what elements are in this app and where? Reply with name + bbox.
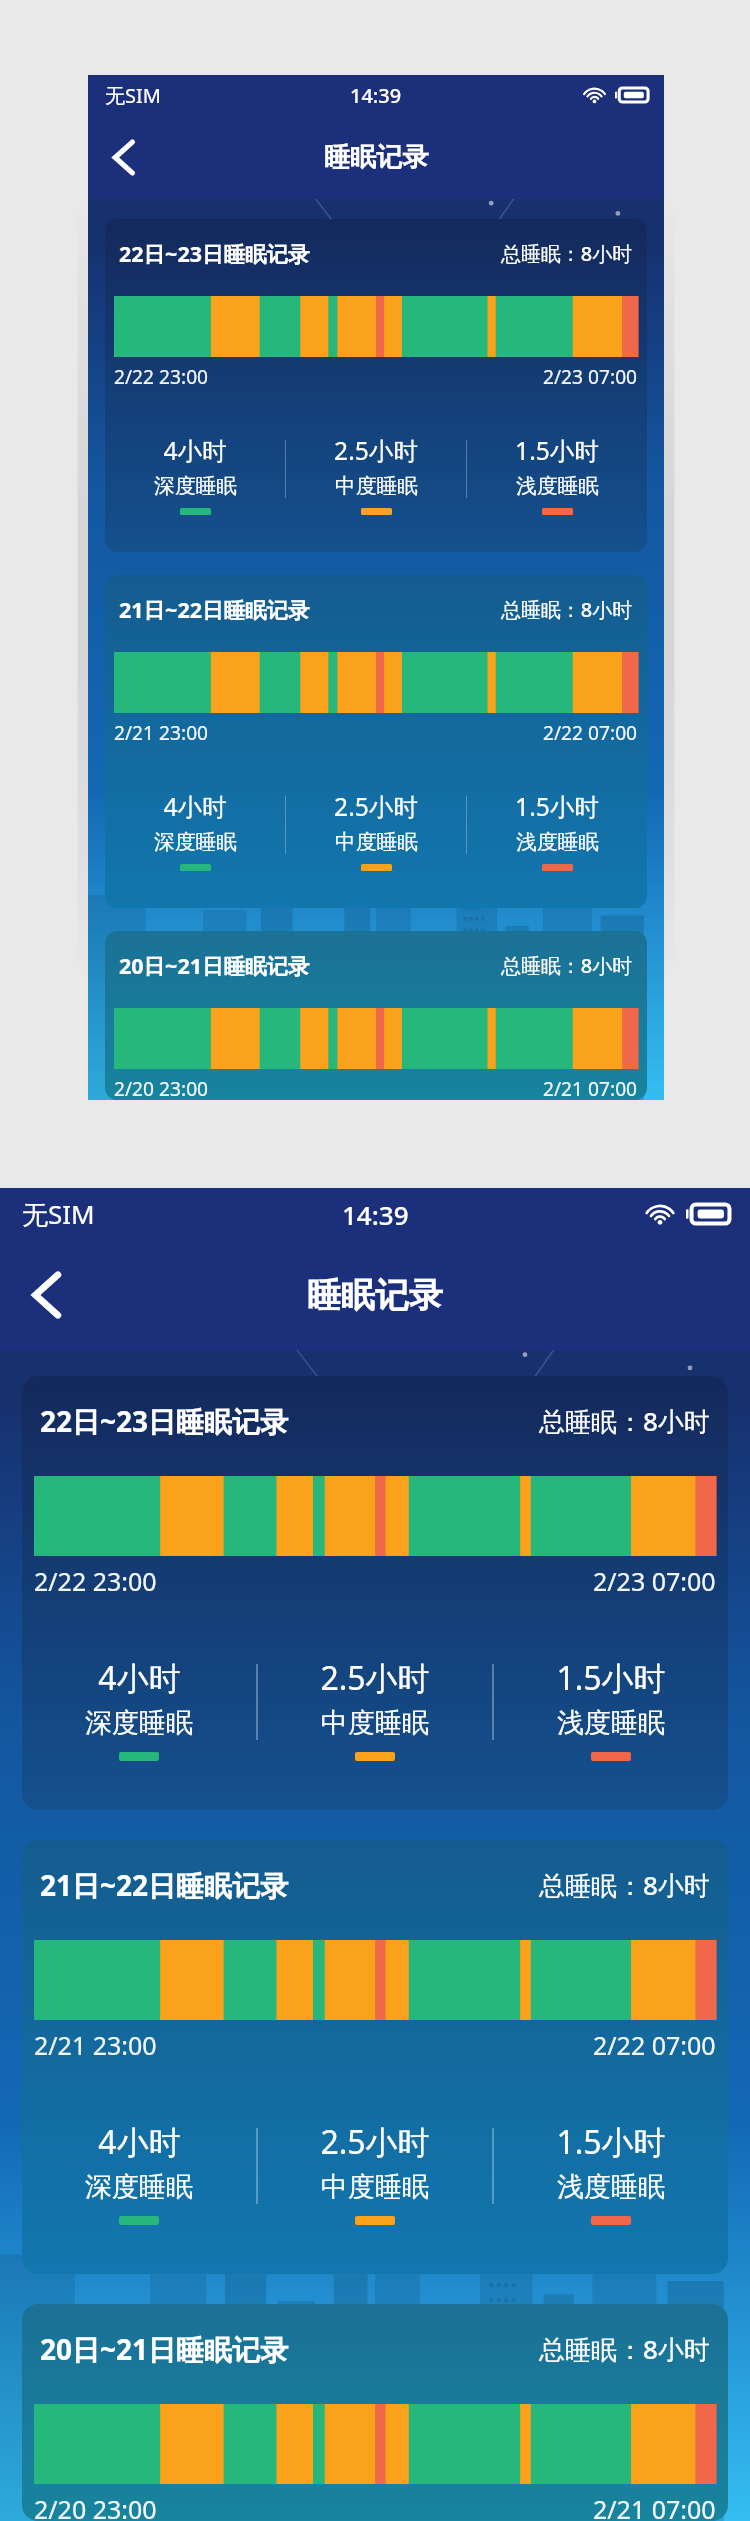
staticText: 中度睡眠 (321, 1706, 429, 1740)
button[interactable]: 1.5小时 (494, 2120, 728, 2225)
staticText: 浅度睡眠 (516, 473, 599, 499)
button[interactable]: Back (8, 1256, 86, 1334)
staticText: 2/21 23:00 (34, 2028, 157, 2062)
staticText: 总睡眠：8小时 (539, 1867, 710, 1903)
staticText: 2/23 07:00 (593, 1564, 716, 1598)
staticText: 1.5小时 (556, 2120, 666, 2164)
staticText: 1.5小时 (515, 434, 599, 468)
button[interactable]: 2.5小时 (286, 434, 466, 515)
staticText: 2/20 23:00 (34, 2492, 157, 2521)
staticText: 20日~21日睡眠记录 (40, 2330, 289, 2368)
staticText: 4小时 (98, 2120, 181, 2164)
staticText: 14:39 (350, 82, 402, 109)
staticText: 中度睡眠 (335, 829, 418, 855)
staticText: 4小时 (163, 434, 227, 468)
staticText: 1.5小时 (556, 1656, 666, 1700)
staticText: 深度睡眠 (154, 829, 237, 855)
staticText: 2/21 23:00 (114, 719, 209, 745)
staticText: 2/22 07:00 (593, 2028, 716, 2062)
staticText: 22日~23日睡眠记录 (40, 1402, 289, 1440)
button[interactable]: 4小时 (105, 790, 285, 871)
button[interactable]: 1.5小时 (467, 434, 647, 515)
staticText: 中度睡眠 (321, 2170, 429, 2204)
staticText: 4小时 (98, 1656, 181, 1700)
staticText: 浅度睡眠 (557, 1706, 665, 1740)
staticText: 2/22 23:00 (114, 363, 209, 389)
staticText: 2/21 07:00 (593, 2492, 716, 2521)
button[interactable]: 20日~21日睡眠记录 (105, 931, 647, 1100)
button[interactable]: 1.5小时 (494, 1656, 728, 1761)
staticText: 2.5小时 (320, 1656, 430, 1700)
button[interactable]: 21日~22日睡眠记录 (105, 575, 647, 908)
button[interactable]: 22日~23日睡眠记录 (22, 1376, 728, 1810)
staticText: 2/22 07:00 (543, 719, 638, 745)
staticText: 2/22 23:00 (34, 1564, 157, 1598)
staticText: 无SIM (105, 82, 161, 109)
staticText: 睡眠记录 (307, 1274, 443, 1317)
staticText: 4小时 (163, 790, 227, 824)
staticText: 21日~22日睡眠记录 (119, 595, 310, 624)
button[interactable]: Back (94, 127, 154, 187)
button[interactable]: 2.5小时 (258, 1656, 492, 1761)
staticText: 2.5小时 (334, 790, 418, 824)
staticText: 21日~22日睡眠记录 (40, 1866, 289, 1904)
staticText: 深度睡眠 (85, 2170, 193, 2204)
staticText: 总睡眠：8小时 (501, 952, 633, 979)
button[interactable]: 2.5小时 (286, 790, 466, 871)
staticText: 浅度睡眠 (516, 829, 599, 855)
button[interactable]: 4小时 (105, 434, 285, 515)
staticText: 14:39 (342, 1197, 409, 1232)
staticText: 2.5小时 (334, 434, 418, 468)
staticText: 2/21 07:00 (543, 1075, 638, 1100)
staticText: 中度睡眠 (335, 473, 418, 499)
staticText: 总睡眠：8小时 (501, 240, 633, 267)
staticText: 深度睡眠 (154, 473, 237, 499)
staticText: 22日~23日睡眠记录 (119, 239, 310, 268)
staticText: 2/23 07:00 (543, 363, 638, 389)
staticText: 20日~21日睡眠记录 (119, 951, 310, 980)
button[interactable]: 1.5小时 (467, 790, 647, 871)
staticText: 总睡眠：8小时 (539, 1403, 710, 1439)
staticText: 总睡眠：8小时 (539, 2331, 710, 2367)
button[interactable]: 4小时 (22, 1656, 256, 1761)
button[interactable]: 2.5小时 (258, 2120, 492, 2225)
staticText: 2.5小时 (320, 2120, 430, 2164)
staticText: 深度睡眠 (85, 1706, 193, 1740)
staticText: 浅度睡眠 (557, 2170, 665, 2204)
button[interactable]: 4小时 (22, 2120, 256, 2225)
staticText: 2/20 23:00 (114, 1075, 209, 1100)
staticText: 1.5小时 (515, 790, 599, 824)
staticText: 睡眠记录 (324, 141, 429, 174)
button[interactable]: 22日~23日睡眠记录 (105, 219, 647, 552)
staticText: 总睡眠：8小时 (501, 596, 633, 623)
button[interactable]: 21日~22日睡眠记录 (22, 1840, 728, 2274)
staticText: 无SIM (22, 1196, 95, 1232)
button[interactable]: 20日~21日睡眠记录 (22, 2304, 728, 2521)
